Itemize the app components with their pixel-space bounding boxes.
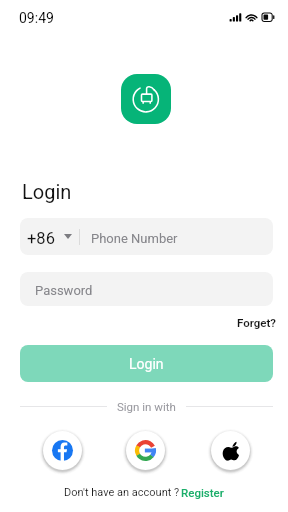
staticText: Login (129, 356, 164, 372)
button[interactable]: Password (20, 272, 273, 306)
staticText: Forget? (237, 316, 276, 329)
staticText: +86 (27, 229, 55, 248)
button[interactable]: Forget? (231, 312, 282, 333)
button[interactable]: Sign in with Apple (211, 431, 250, 470)
staticText: Phone Number (91, 231, 178, 246)
button[interactable]: Register (181, 486, 224, 499)
button[interactable]: +86 (20, 218, 79, 255)
button[interactable]: Login (20, 345, 273, 382)
staticText: Sign in with (117, 400, 176, 413)
button[interactable]: Sign in with Google (126, 431, 165, 470)
staticText: 09:49 (19, 10, 54, 26)
button[interactable]: Sign in with Facebook (43, 431, 82, 470)
staticText: Don't have an account ? (64, 486, 180, 499)
staticText: Password (35, 283, 93, 298)
staticText: Login (22, 180, 72, 203)
